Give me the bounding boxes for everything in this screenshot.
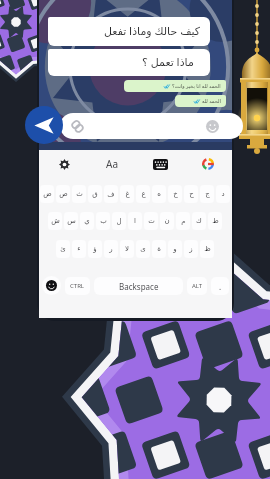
staticText: ب [100, 217, 107, 225]
button[interactable]: ث [72, 185, 86, 203]
staticText: CTRL [70, 282, 85, 290]
staticText: ض [43, 190, 52, 198]
staticText: ئ [60, 245, 66, 253]
staticText: ف [107, 190, 115, 198]
button[interactable]: Google [199, 155, 217, 173]
button[interactable]: ز [184, 240, 198, 258]
staticText: ظ [204, 245, 211, 253]
staticText: ل [116, 217, 122, 225]
staticText: ي [84, 217, 90, 225]
button[interactable]: و [168, 240, 182, 258]
button[interactable]: ط [208, 212, 222, 230]
button[interactable]: ص [56, 185, 70, 203]
button[interactable]: ر [104, 240, 118, 258]
button[interactable]: ؤ [88, 240, 102, 258]
staticText: ش [51, 217, 60, 225]
button[interactable]: Aa [101, 153, 123, 175]
staticText: لا [125, 245, 129, 253]
staticText: ا [134, 217, 136, 225]
staticText: ن [164, 217, 170, 225]
button[interactable]: ع [136, 185, 150, 203]
staticText: س [67, 217, 76, 225]
button[interactable]: Emoji [42, 276, 61, 295]
button[interactable]: ن [160, 212, 174, 230]
staticText: ء [77, 245, 81, 253]
staticText: ر [109, 245, 113, 253]
staticText: ك [196, 217, 202, 225]
button[interactable]: ل [112, 212, 126, 230]
staticText: كيف حالك وماذا تفعل [104, 23, 201, 38]
button[interactable]: ض [40, 185, 54, 203]
button[interactable]: ى [136, 240, 150, 258]
staticText: ؤ [93, 245, 97, 253]
button[interactable]: ئ [56, 240, 70, 258]
staticText: ج [205, 190, 210, 198]
staticText: ماذا تعمل ؟ [142, 54, 194, 69]
button[interactable]: Backspace [94, 277, 183, 295]
button[interactable]: ف [104, 185, 118, 203]
staticText: . [219, 281, 222, 292]
button[interactable]: د [216, 185, 230, 203]
button[interactable]: غ [120, 185, 134, 203]
staticText: الحمد لله انا بخير وانت؟ [172, 83, 221, 90]
button[interactable]: لا [120, 240, 134, 258]
button[interactable]: ا [128, 212, 142, 230]
other: Emoji [206, 120, 219, 133]
staticText: ة [157, 245, 161, 253]
button[interactable]: الحمد لله انا بخير وانت؟ [124, 80, 226, 92]
staticText: ط [212, 217, 219, 225]
button[interactable]: م [176, 212, 190, 230]
staticText: الحمد لله [202, 98, 221, 105]
staticText: و [173, 245, 177, 253]
button[interactable]: الحمد لله [175, 95, 226, 107]
button[interactable]: CTRL [65, 277, 90, 295]
button[interactable]: . [211, 277, 229, 295]
button[interactable]: Keyboard layout [150, 154, 170, 174]
button[interactable]: ب [96, 212, 110, 230]
button[interactable]: ج [200, 185, 214, 203]
staticText: ى [140, 245, 146, 253]
staticText: Backspace [119, 281, 159, 292]
staticText: ص [59, 190, 68, 198]
button[interactable]: ء [72, 240, 86, 258]
button[interactable]: ت [144, 212, 158, 230]
staticText: م [181, 217, 186, 225]
staticText: ALT [192, 282, 203, 290]
button[interactable]: Settings [55, 155, 73, 173]
button[interactable]: Send [25, 106, 63, 144]
staticText: ز [189, 245, 193, 253]
staticText: غ [125, 190, 130, 198]
staticText: خ [173, 190, 178, 198]
staticText: ه [157, 190, 161, 198]
button[interactable]: ك [192, 212, 206, 230]
staticText: د [221, 190, 225, 198]
button[interactable]: ق [88, 185, 102, 203]
button[interactable]: ي [80, 212, 94, 230]
staticText: Aa [106, 157, 118, 171]
other: Attach [71, 120, 84, 133]
button[interactable]: Attach [60, 113, 243, 139]
button[interactable]: ش [48, 212, 62, 230]
staticText: ث [76, 190, 83, 198]
staticText: ق [92, 190, 98, 198]
button[interactable]: ح [184, 185, 198, 203]
staticText: ع [141, 190, 146, 198]
staticText: ت [148, 217, 155, 225]
button[interactable]: ة [152, 240, 166, 258]
button[interactable]: ظ [200, 240, 214, 258]
button[interactable]: ALT [187, 277, 207, 295]
staticText: ح [189, 190, 194, 198]
button[interactable]: س [64, 212, 78, 230]
button[interactable]: كيف حالك وماذا تفعل [48, 17, 210, 46]
button[interactable]: خ [168, 185, 182, 203]
button[interactable]: ماذا تعمل ؟ [48, 49, 210, 76]
button[interactable]: ه [152, 185, 166, 203]
